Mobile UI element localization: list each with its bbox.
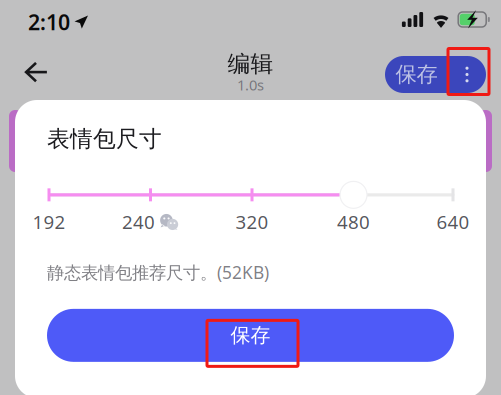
staticText: 480 bbox=[337, 209, 370, 234]
staticText: 编辑 bbox=[227, 50, 273, 78]
staticText: 640 bbox=[436, 209, 469, 234]
staticText: 1.0s bbox=[237, 75, 264, 94]
staticText: 保存 bbox=[395, 61, 437, 88]
staticText: 320 bbox=[235, 209, 268, 234]
button[interactable]: More options bbox=[448, 56, 486, 93]
staticText: 2:10 bbox=[28, 8, 70, 36]
staticText: 表情包尺寸 bbox=[47, 125, 162, 153]
button[interactable]: 保存 bbox=[47, 309, 454, 362]
staticText: 192 bbox=[32, 209, 65, 234]
button[interactable]: Back bbox=[13, 50, 59, 94]
staticText: 保存 bbox=[230, 323, 270, 348]
button[interactable]: 保存 bbox=[385, 56, 448, 93]
staticText: 240 bbox=[122, 209, 155, 234]
staticText: 静态表情包推荐尺寸。(52KB) bbox=[47, 261, 269, 284]
